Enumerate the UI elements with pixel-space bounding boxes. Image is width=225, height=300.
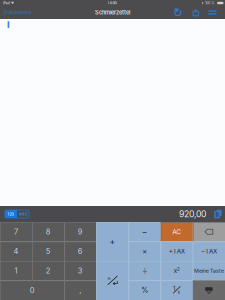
button[interactable]: x hoch 2 bbox=[161, 261, 193, 280]
staticText: 2 bbox=[177, 267, 180, 272]
staticText: 9 bbox=[78, 227, 83, 236]
button[interactable]: 4 bbox=[0, 241, 32, 261]
staticText: 8 bbox=[46, 227, 51, 236]
button[interactable]: % bbox=[129, 280, 161, 300]
button[interactable]: Löschen bbox=[193, 222, 225, 241]
staticText: 5 bbox=[46, 247, 51, 256]
staticText: % bbox=[141, 286, 148, 295]
button[interactable]: 7 bbox=[0, 222, 32, 241]
button[interactable]: Zurücksetzen bbox=[171, 6, 184, 19]
button[interactable]: Tastatur ausblenden bbox=[193, 280, 225, 300]
staticText: AC bbox=[172, 228, 181, 236]
button[interactable]: 1 durch x bbox=[161, 280, 193, 300]
staticText: , bbox=[79, 286, 81, 295]
button[interactable]: ÷ bbox=[129, 261, 161, 280]
staticText: 6 bbox=[78, 247, 83, 256]
staticText: × bbox=[142, 247, 147, 256]
staticText: x bbox=[178, 289, 181, 295]
button[interactable]: − bbox=[129, 222, 161, 241]
button[interactable]: 0 bbox=[0, 280, 64, 300]
staticText: + bbox=[109, 236, 115, 247]
staticText: −TAX bbox=[201, 247, 217, 255]
button[interactable]: 9 bbox=[64, 222, 96, 241]
button[interactable]: × bbox=[129, 241, 161, 261]
button[interactable]: Teilen bbox=[189, 6, 202, 19]
staticText: 14:00 bbox=[108, 1, 117, 5]
button[interactable]: 1 bbox=[0, 261, 32, 280]
staticText: 1 bbox=[15, 266, 18, 275]
button[interactable]: Menü bbox=[206, 6, 219, 19]
button[interactable]: 3 bbox=[64, 261, 96, 280]
staticText: iPad bbox=[3, 1, 10, 5]
button[interactable]: , bbox=[64, 280, 96, 300]
staticText: Meine Taste bbox=[194, 268, 224, 274]
staticText: 1 bbox=[173, 285, 175, 292]
button[interactable]: Einfügen bbox=[213, 208, 222, 220]
staticText: 920,00 bbox=[179, 209, 206, 219]
button[interactable]: 5 bbox=[32, 241, 64, 261]
staticText: ÷ bbox=[142, 266, 147, 275]
staticText: 0 bbox=[30, 286, 35, 295]
staticText: Schmierzettel bbox=[95, 9, 130, 16]
button[interactable]: Gleich bbox=[96, 261, 128, 300]
button[interactable]: +TAX bbox=[161, 241, 193, 261]
staticText: = bbox=[107, 274, 111, 282]
button[interactable]: 8 bbox=[32, 222, 64, 241]
button[interactable]: + bbox=[96, 222, 128, 261]
staticText: x bbox=[174, 267, 177, 275]
button[interactable]: Dokumente bbox=[0, 6, 36, 19]
staticText: 7 bbox=[14, 227, 18, 236]
staticText: 123 bbox=[7, 212, 14, 216]
button[interactable]: Tastaturmodus bbox=[0, 210, 29, 218]
staticText: − bbox=[142, 227, 148, 237]
staticText: 3 bbox=[78, 266, 83, 275]
button[interactable]: −TAX bbox=[193, 241, 225, 261]
staticText: 100 % bbox=[205, 1, 215, 5]
button[interactable]: 6 bbox=[64, 241, 96, 261]
button[interactable]: AC bbox=[161, 222, 193, 241]
staticText: +TAX bbox=[169, 247, 185, 255]
staticText: Dokumente bbox=[4, 9, 32, 15]
staticText: 2 bbox=[46, 266, 51, 275]
staticText: 4 bbox=[14, 247, 19, 256]
staticText: ABC bbox=[18, 212, 27, 216]
button[interactable]: 2 bbox=[32, 261, 64, 280]
button[interactable]: Meine Taste bbox=[193, 261, 225, 280]
